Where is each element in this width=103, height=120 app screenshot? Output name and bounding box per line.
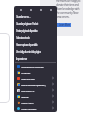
staticText: Traducir esta página (selección) (21, 83, 51, 86)
staticText: Enviar página al dispositivo (16, 29, 38, 33)
button[interactable]: Guardar página en Pocket (14, 20, 57, 27)
button[interactable]: Seleccionar todo (14, 34, 57, 41)
staticText: Ver código fuente de la página (16, 50, 41, 54)
staticText: Guardar página en Pocket (16, 22, 38, 26)
button[interactable]: Search by Image (14, 75, 57, 81)
button[interactable]: Ver código fuente de la página (14, 48, 57, 55)
staticText: Send this page to Read Later (21, 65, 55, 68)
staticText: newcomers. (56, 15, 70, 19)
button[interactable]: Cookie AutoDelete (14, 105, 57, 111)
button[interactable]: Forward (27, 6, 34, 13)
staticText: Zoom Page WE (21, 89, 51, 92)
staticText: Cookie AutoDelete (21, 107, 51, 110)
button[interactable]: Back (17, 6, 24, 13)
staticText: members are happy to (56, 0, 81, 3)
staticText: SingleFile (21, 95, 51, 98)
button[interactable]: Inspeccionar (14, 55, 57, 62)
button[interactable]: Learn More (57, 23, 71, 27)
staticText: Search by Image (21, 77, 51, 80)
staticText: share knowledge with (56, 7, 80, 11)
staticText: Seleccionar todo (16, 36, 30, 40)
staticText: the community. New (56, 11, 79, 15)
staticText: Hacer captura de pantalla (16, 43, 37, 47)
staticText: Learn More (59, 23, 70, 27)
staticText: Custom Menu (21, 101, 51, 104)
button[interactable]: Bookmark (47, 6, 54, 13)
button[interactable]: Smart Print (14, 69, 57, 75)
staticText: Smart Print (21, 71, 55, 74)
button[interactable]: SingleFile (14, 93, 57, 99)
button[interactable]: Hacer captura de pantalla (14, 41, 57, 48)
button[interactable]: Guardar como… (14, 13, 57, 20)
button[interactable]: Traducir esta página (selección) (14, 81, 57, 87)
staticText: donate their time and (56, 3, 79, 7)
button[interactable]: Enviar página al dispositivo (14, 27, 57, 34)
button[interactable]: Custom Menu (14, 99, 57, 105)
button[interactable]: Send this page to Read Later (14, 63, 57, 69)
button[interactable]: Zoom Page WE (14, 87, 57, 93)
staticText: Inspeccionar (16, 57, 27, 61)
staticText: Guardar como… (16, 15, 31, 19)
button[interactable]: Reload (37, 6, 44, 13)
